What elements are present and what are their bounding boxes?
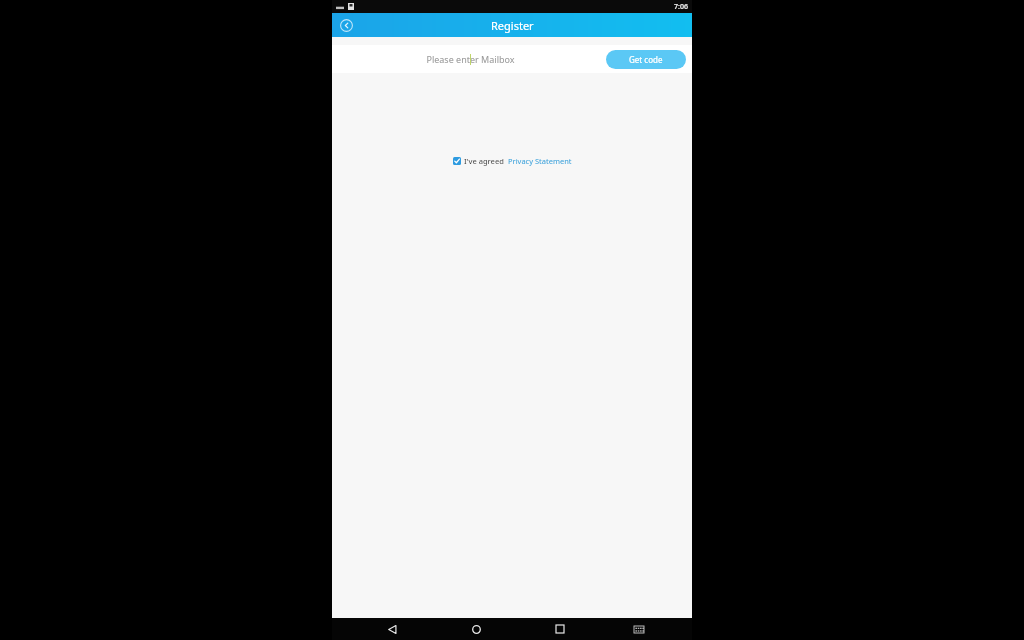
staticText: 7:06	[674, 2, 688, 12]
staticText: Please enter Mailbox	[426, 53, 515, 65]
button[interactable]: Get code	[606, 50, 686, 69]
button[interactable]: Home	[465, 618, 487, 640]
button[interactable]: Back	[381, 618, 403, 640]
staticText: I've agreed	[464, 156, 504, 166]
staticText: Get code	[629, 54, 663, 65]
button[interactable]: Privacy Statement	[508, 156, 572, 166]
button[interactable]: Back	[336, 15, 356, 35]
button[interactable]: Keyboard	[628, 618, 650, 640]
button[interactable]: I've agreed	[449, 154, 576, 168]
button[interactable]: Recent apps	[549, 618, 571, 640]
button[interactable]: Please enter Mailbox	[338, 45, 602, 73]
staticText: Register	[491, 18, 534, 33]
